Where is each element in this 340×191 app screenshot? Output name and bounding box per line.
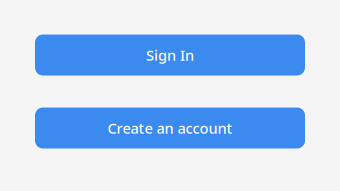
button[interactable]: Create an account xyxy=(35,107,305,148)
button[interactable]: Sign In xyxy=(35,34,305,75)
staticText: Sign In xyxy=(146,45,194,65)
staticText: Create an account xyxy=(107,118,232,138)
